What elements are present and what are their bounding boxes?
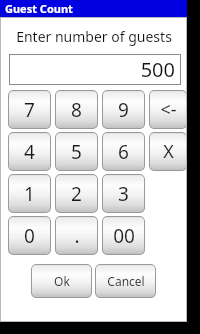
button[interactable]: 0 [8,216,51,255]
button[interactable]: 7 [8,90,51,129]
staticText: Guest Count [5,1,73,16]
staticText: X [163,139,174,164]
staticText: 500 [140,56,175,83]
staticText: 7 [24,97,35,123]
button[interactable]: Cancel [95,264,156,298]
button[interactable]: 500 [9,54,181,85]
button[interactable]: 2 [55,174,98,213]
button[interactable]: Ok [31,264,92,298]
button[interactable]: 5 [55,132,98,171]
button[interactable]: 4 [8,132,51,171]
staticText: <- [160,97,177,122]
staticText: 2 [71,181,82,207]
button[interactable]: 8 [55,90,98,129]
button[interactable]: <- [149,90,187,129]
button[interactable]: . [55,216,98,255]
staticText: 5 [71,139,82,165]
button[interactable]: 9 [102,90,145,129]
staticText: 00 [113,223,135,249]
button[interactable]: 00 [102,216,145,255]
staticText: 9 [118,97,129,123]
staticText: 3 [118,181,129,207]
staticText: 6 [118,139,129,165]
staticText: . [74,223,80,249]
button[interactable]: X [149,132,187,171]
staticText: 4 [24,139,35,165]
staticText: 8 [71,97,82,123]
staticText: 0 [24,223,35,249]
staticText: Ok [54,273,70,289]
button[interactable]: 6 [102,132,145,171]
staticText: 1 [24,181,35,207]
button[interactable]: 3 [102,174,145,213]
staticText: Cancel [107,273,145,289]
staticText: Enter number of guests [16,27,172,46]
button[interactable]: 1 [8,174,51,213]
